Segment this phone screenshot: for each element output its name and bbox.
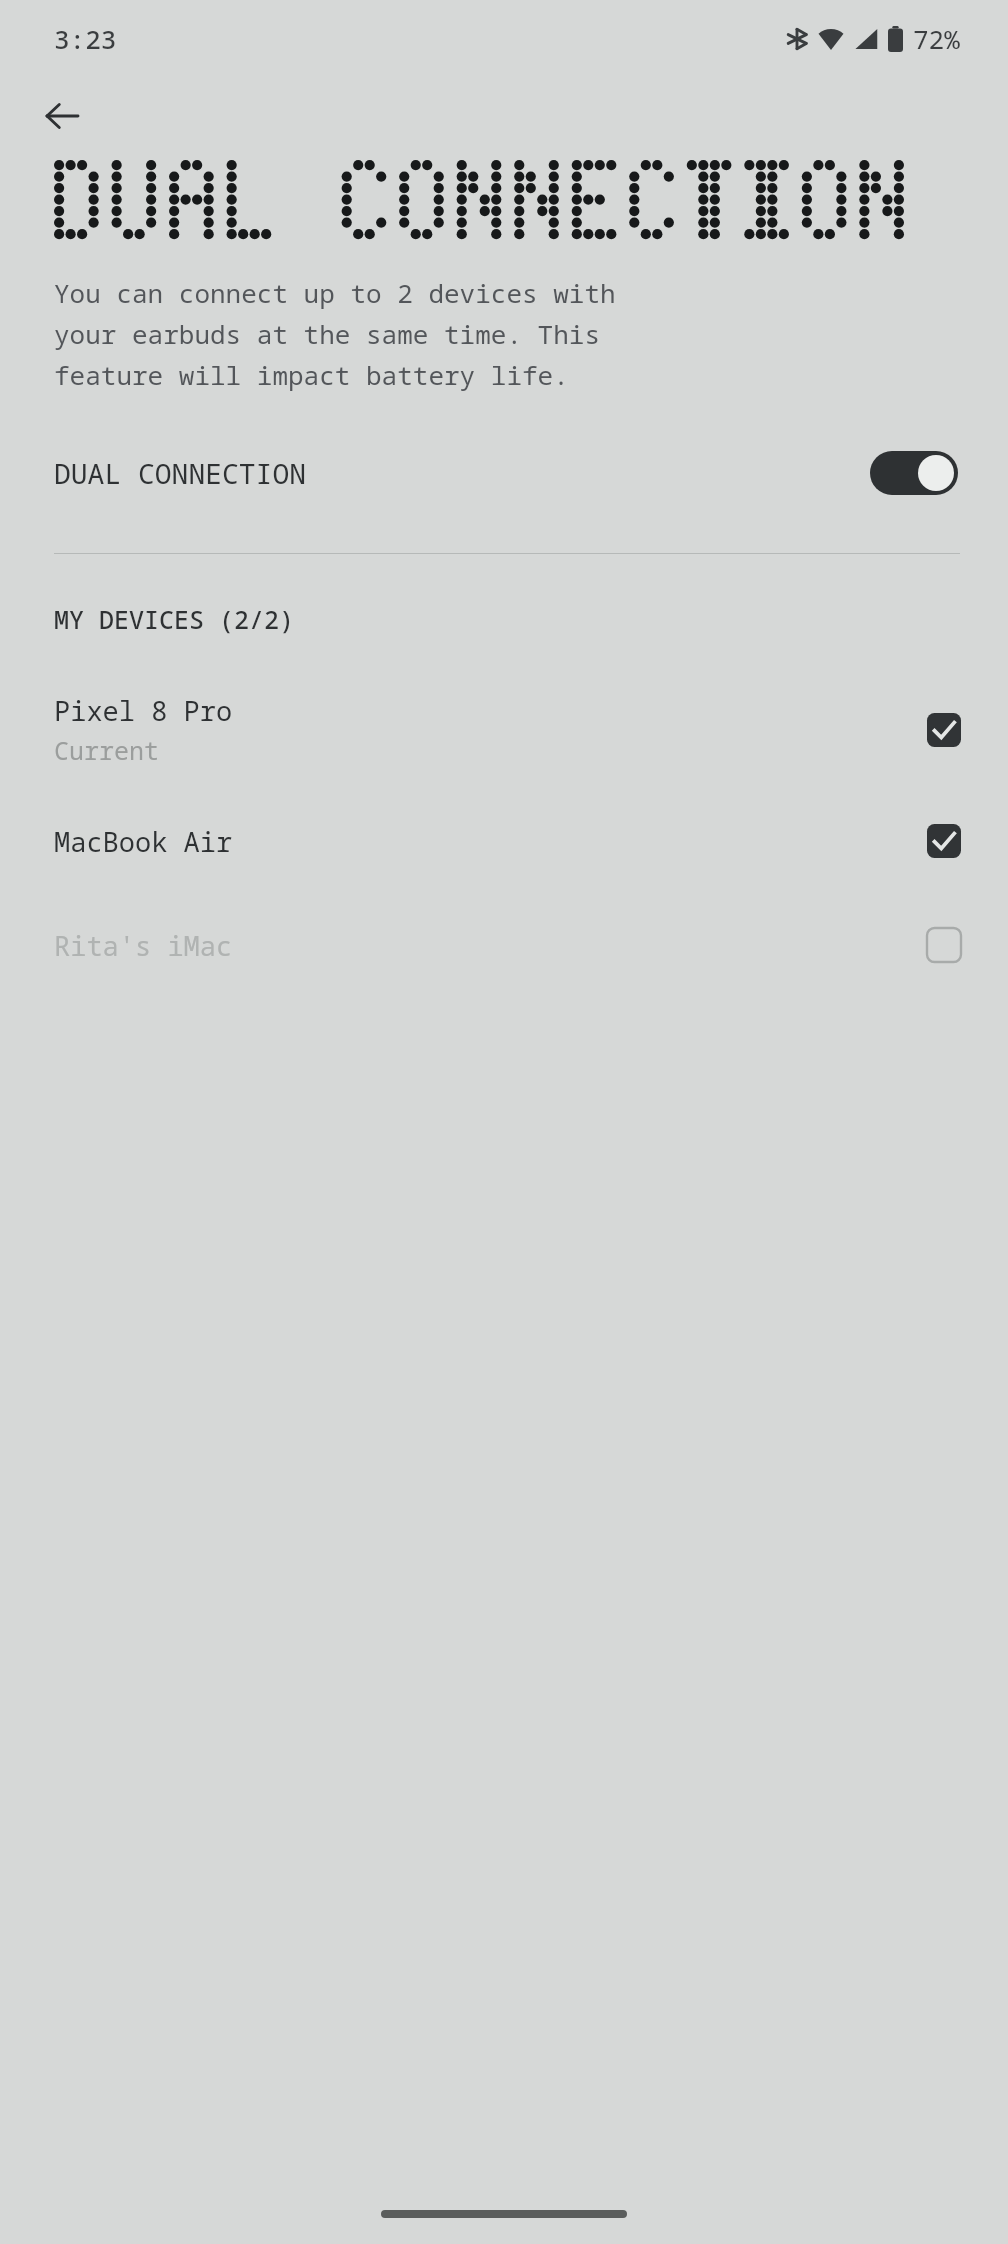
staticText: Pixel 8 Pro — [54, 692, 233, 729]
staticText: DUAL CONNECTION — [54, 454, 870, 492]
button[interactable]: Not selected — [922, 923, 966, 967]
staticText: You can connect up to 2 devices with you… — [54, 275, 616, 393]
staticText: Current — [54, 733, 160, 767]
staticText: 72% — [913, 21, 960, 56]
staticText: MacBook Air — [54, 823, 233, 860]
button[interactable]: Back — [38, 92, 86, 140]
staticText: Rita's iMac — [54, 927, 233, 964]
staticText: 3:23 — [54, 21, 117, 56]
staticText: MY DEVICES (2/2) — [54, 602, 295, 636]
button[interactable]: Pixel 8 Pro — [0, 678, 1008, 781]
button[interactable]: Rita's iMac — [0, 909, 1008, 981]
button[interactable]: Selected — [922, 819, 966, 863]
button[interactable]: Dual connection toggle — [870, 451, 958, 495]
button[interactable]: DUAL CONNECTION — [0, 437, 1008, 509]
button[interactable]: Selected — [922, 708, 966, 752]
button[interactable]: MacBook Air — [0, 805, 1008, 877]
